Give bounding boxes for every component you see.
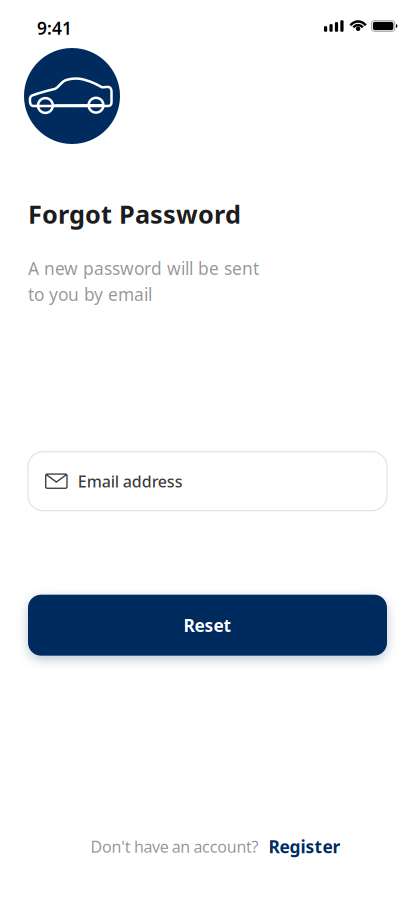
staticText: 9:41 [37,16,72,39]
staticText: Register [269,835,341,858]
staticText: to you by email [28,283,152,306]
staticText: A new password will be sent [28,257,259,280]
staticText: Reset [183,614,231,637]
button[interactable]: Reset [28,595,387,656]
button[interactable]: Register [259,835,341,858]
staticText: Forgot Password [28,197,241,231]
staticText: Email address [78,471,183,492]
button[interactable]: Email address [28,452,387,511]
staticText: Don't have an account? [90,836,259,857]
